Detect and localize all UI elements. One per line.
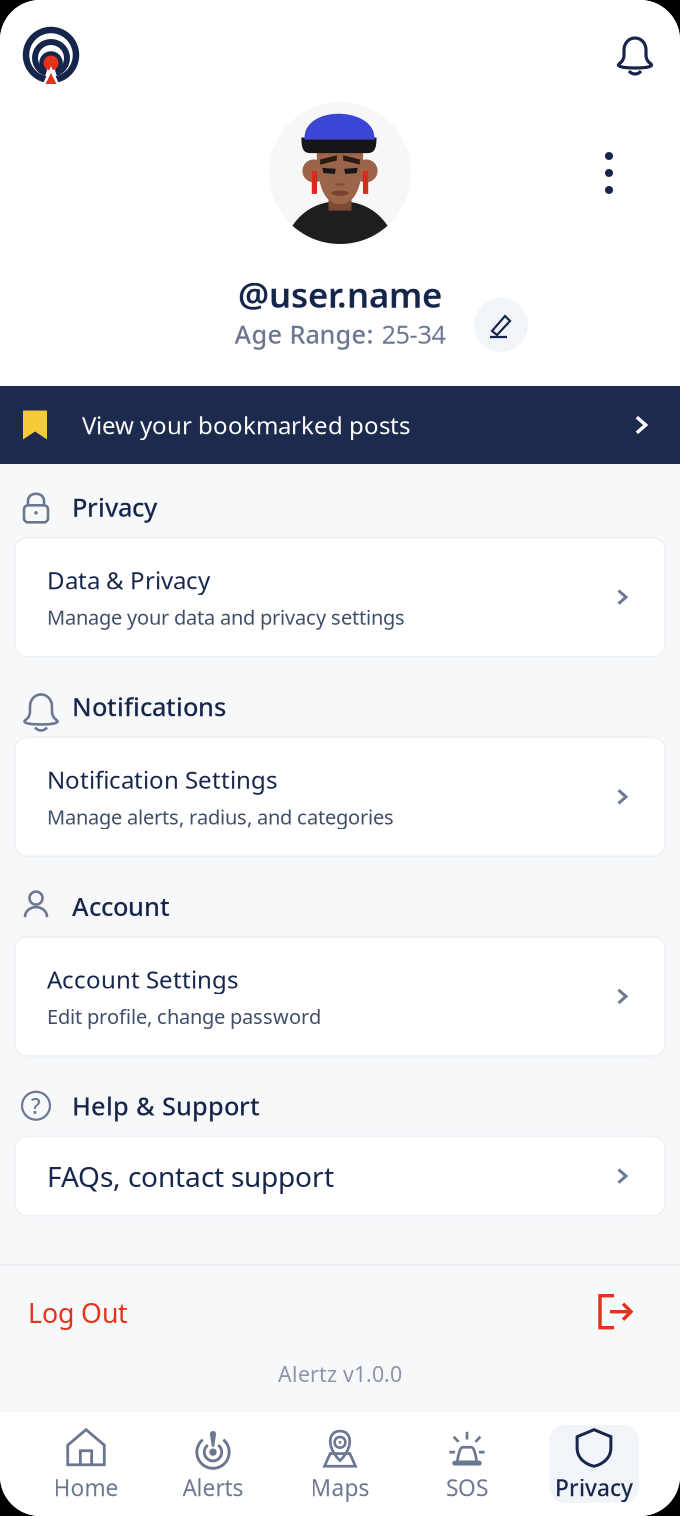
staticText: SOS xyxy=(446,1472,488,1502)
staticText: Account Settings xyxy=(47,963,238,995)
staticText: Alertz v1.0.0 xyxy=(278,1360,402,1388)
staticText: Manage alerts, radius, and categories xyxy=(47,803,394,830)
button[interactable]: Notifications xyxy=(610,30,660,80)
button[interactable]: Notification Settings xyxy=(0,737,680,856)
staticText: Alerts xyxy=(182,1472,243,1502)
staticText: ? xyxy=(31,1092,41,1120)
staticText: 25-34 xyxy=(381,317,445,351)
staticText: View your bookmarked posts xyxy=(82,409,410,441)
staticText: Notifications xyxy=(72,690,226,723)
staticText: Data & Privacy xyxy=(47,564,210,596)
button[interactable]: Account Settings xyxy=(0,937,680,1056)
button[interactable]: Log Out xyxy=(0,1266,680,1360)
button[interactable]: Maps xyxy=(295,1425,385,1503)
staticText: Privacy xyxy=(72,490,157,524)
staticText: Help & Support xyxy=(72,1089,260,1122)
staticText: Edit profile, change password xyxy=(47,1003,321,1030)
button[interactable]: SOS xyxy=(422,1425,512,1503)
button[interactable]: Edit profile xyxy=(474,298,528,352)
staticText: Manage your data and privacy settings xyxy=(47,604,405,630)
staticText: Age Range: xyxy=(234,317,373,351)
button[interactable]: Home xyxy=(41,1425,131,1503)
button[interactable]: FAQs, contact support xyxy=(0,1137,680,1216)
staticText: FAQs, contact support xyxy=(47,1157,334,1195)
staticText: Notification Settings xyxy=(47,764,277,795)
staticText: Maps xyxy=(310,1472,369,1502)
staticText: Log Out xyxy=(28,1295,128,1330)
button[interactable]: Alerts xyxy=(168,1425,258,1503)
button[interactable]: View your bookmarked posts xyxy=(0,386,680,464)
button[interactable]: Data & Privacy xyxy=(0,538,680,657)
staticText: Home xyxy=(53,1472,118,1502)
button[interactable]: Privacy xyxy=(549,1425,639,1503)
staticText: Privacy xyxy=(555,1472,633,1502)
staticText: @user.name xyxy=(238,271,442,317)
button[interactable]: More options xyxy=(584,139,634,207)
staticText: Account xyxy=(72,889,170,923)
